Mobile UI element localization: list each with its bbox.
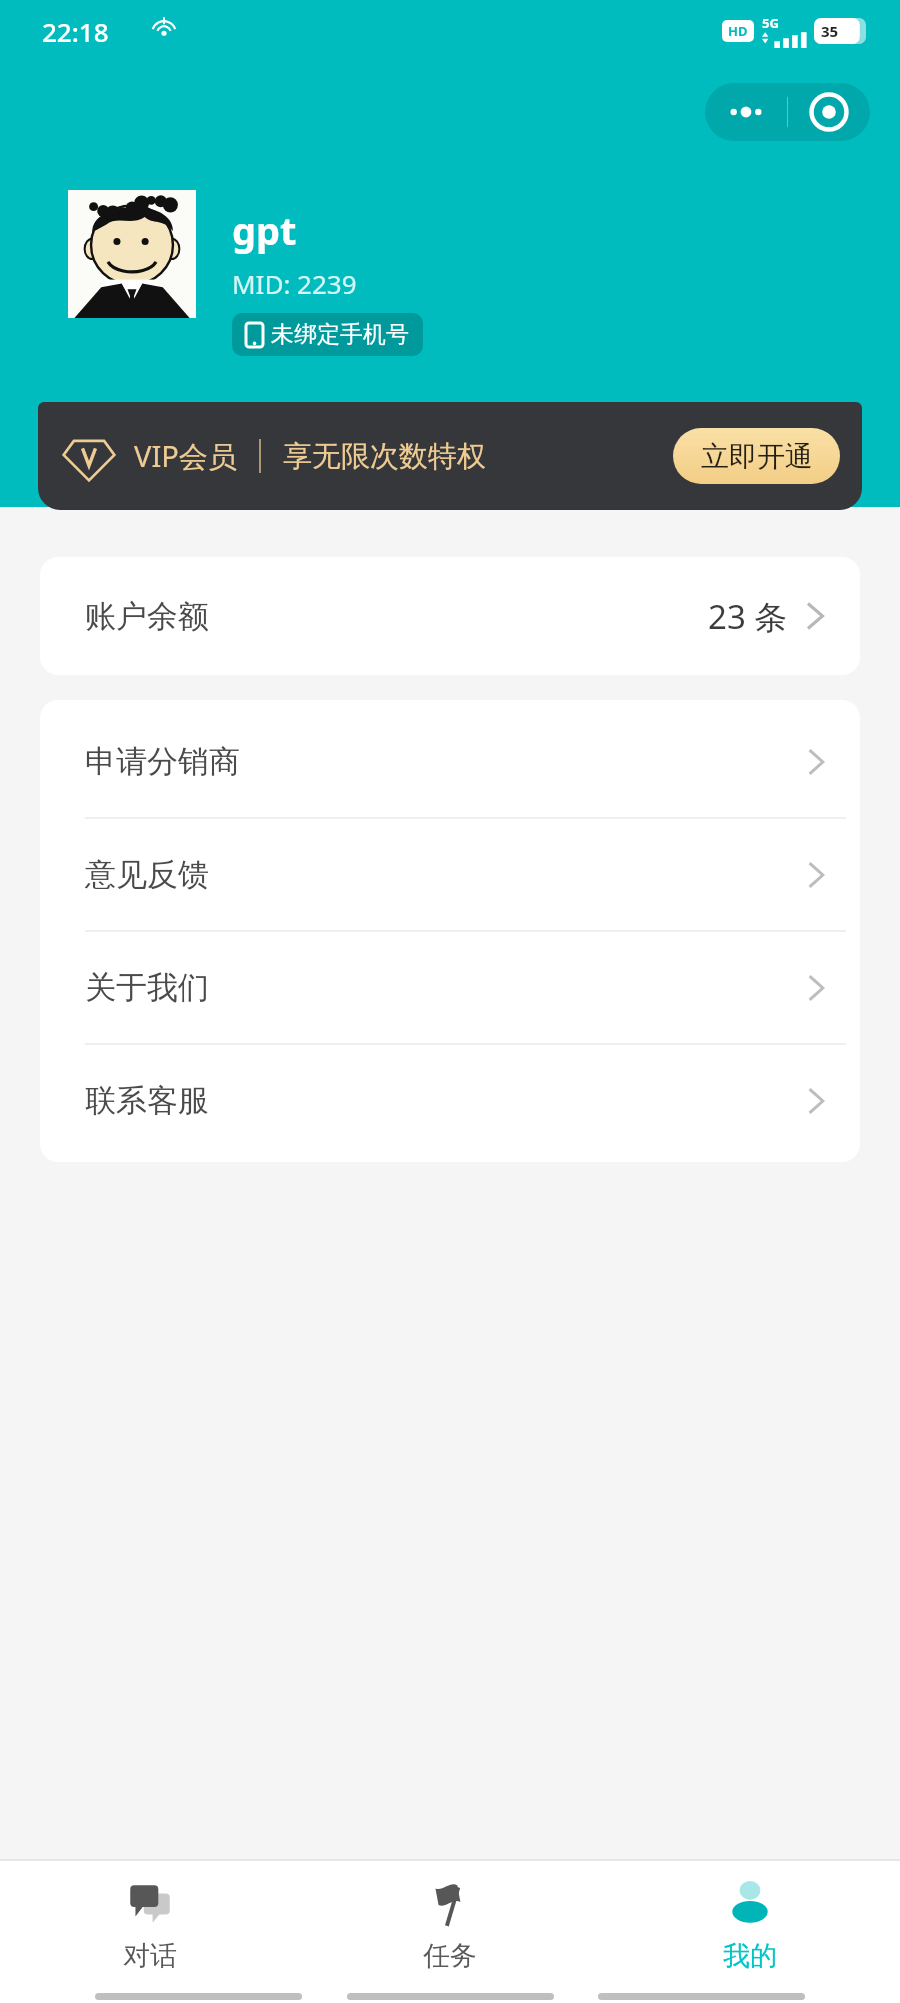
staticText: gpt — [232, 204, 297, 256]
staticText: 关于我们 — [85, 968, 209, 1007]
button[interactable]: 我的 — [600, 1861, 900, 1989]
staticText: 5G — [762, 14, 779, 32]
staticText: HD — [728, 22, 748, 40]
staticText: 35 — [821, 21, 839, 41]
button[interactable]: 关于我们 — [40, 932, 860, 1043]
staticText: 申请分销商 — [85, 742, 240, 781]
staticText: 23 条 — [708, 594, 788, 639]
button[interactable]: Target — [788, 83, 870, 141]
staticText: 未绑定手机号 — [271, 320, 409, 349]
button[interactable]: 账户余额 — [40, 557, 860, 675]
button[interactable]: VIP会员 — [38, 402, 862, 510]
button[interactable]: 任务 — [300, 1861, 600, 1989]
staticText: 任务 — [423, 1939, 477, 1973]
staticText: 账户余额 — [85, 597, 209, 636]
staticText: 22:18 — [42, 14, 109, 49]
staticText: MID: 2239 — [232, 266, 357, 301]
button[interactable]: 立即开通 — [673, 428, 840, 484]
staticText: 我的 — [723, 1939, 777, 1973]
button[interactable]: More — [705, 83, 787, 141]
button[interactable]: 未绑定手机号 — [232, 313, 423, 356]
button[interactable]: 申请分销商 — [40, 706, 860, 817]
staticText: 享无限次数特权 — [283, 438, 486, 475]
button[interactable]: 意见反馈 — [40, 819, 860, 930]
staticText: 联系客服 — [85, 1081, 209, 1120]
staticText: 对话 — [123, 1939, 177, 1973]
staticText: 意见反馈 — [85, 855, 209, 894]
button[interactable]: 对话 — [0, 1861, 300, 1989]
button[interactable]: 联系客服 — [40, 1045, 860, 1156]
staticText: 立即开通 — [701, 439, 813, 474]
staticText: VIP会员 — [134, 436, 237, 476]
